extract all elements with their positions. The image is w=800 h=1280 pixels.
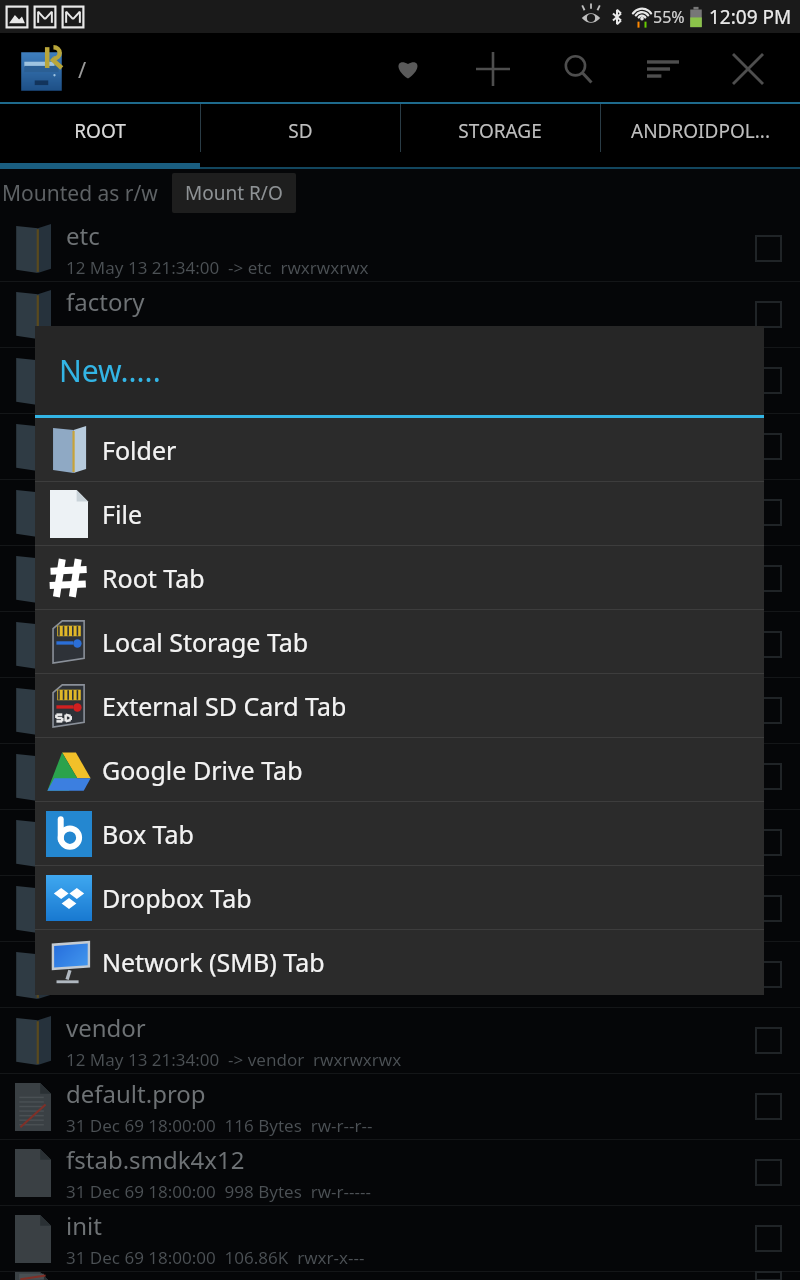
- button[interactable]: [0, 744, 800, 809]
- staticText: 12 May 13 21:34:00 -> efs rwxrwxrwx: [66, 322, 369, 345]
- staticText: 55%: [653, 6, 685, 28]
- staticText: STORAGE: [458, 118, 542, 144]
- button[interactable]: Dropbox Tab: [35, 866, 764, 929]
- button[interactable]: [0, 876, 800, 941]
- staticText: 12 May 13 21:34:00 -> etc rwxrwxrwx: [66, 256, 369, 279]
- button[interactable]: [0, 414, 800, 479]
- button[interactable]: vendor: [0, 1008, 800, 1073]
- staticText: Mounted as r/w: [2, 179, 158, 208]
- staticText: Dropbox Tab: [102, 881, 252, 915]
- button[interactable]: Box Tab: [35, 802, 764, 865]
- staticText: Folder: [102, 433, 177, 467]
- button[interactable]: Favorites: [365, 33, 450, 104]
- staticText: 31 Dec 69 18:00:00 106.86K rwxr-x---: [66, 1246, 365, 1269]
- button[interactable]: New: [450, 33, 535, 104]
- staticText: New.....: [59, 350, 161, 391]
- staticText: factory: [66, 285, 145, 318]
- button[interactable]: init: [0, 1206, 800, 1271]
- staticText: /: [78, 54, 87, 84]
- button[interactable]: [0, 810, 800, 875]
- button[interactable]: Search: [535, 33, 620, 104]
- button[interactable]: init.bt.rc: [0, 1272, 800, 1280]
- staticText: External SD Card Tab: [102, 689, 347, 723]
- button[interactable]: STORAGE: [400, 104, 600, 169]
- button[interactable]: Root Tab: [35, 546, 764, 609]
- button[interactable]: factory: [0, 282, 800, 347]
- button[interactable]: ANDROIDPOL...: [600, 104, 800, 169]
- button[interactable]: [0, 480, 800, 545]
- button[interactable]: Sort: [620, 33, 705, 104]
- button[interactable]: [0, 348, 800, 413]
- staticText: vendor: [66, 1011, 146, 1044]
- staticText: init: [66, 1209, 102, 1242]
- staticText: 12:09 PM: [709, 4, 792, 30]
- button[interactable]: etc: [0, 216, 800, 281]
- button[interactable]: ROOT: [0, 104, 200, 169]
- button[interactable]: default.prop: [0, 1074, 800, 1139]
- staticText: Box Tab: [102, 817, 194, 851]
- button[interactable]: File: [35, 482, 764, 545]
- staticText: 31 Dec 69 18:00:00 998 Bytes rw-r-----: [66, 1180, 371, 1203]
- staticText: etc: [66, 219, 100, 252]
- staticText: 12 May 13 21:34:00 -> vendor rwxrwxrwx: [66, 1048, 402, 1071]
- staticText: Local Storage Tab: [102, 625, 309, 659]
- button[interactable]: [0, 678, 800, 743]
- button[interactable]: Google Drive Tab: [35, 738, 764, 801]
- staticText: Root Tab: [102, 561, 205, 595]
- staticText: fstab.smdk4x12: [66, 1143, 245, 1176]
- staticText: default.prop: [66, 1077, 206, 1110]
- button[interactable]: App icon: [14, 41, 70, 97]
- button[interactable]: SD: [200, 104, 400, 169]
- button[interactable]: Close: [705, 33, 790, 104]
- staticText: SD: [288, 118, 313, 144]
- staticText: ANDROIDPOL...: [631, 118, 770, 144]
- button[interactable]: Network (SMB) Tab: [35, 930, 764, 993]
- button[interactable]: Mount R/O: [172, 173, 296, 213]
- staticText: 31 Dec 69 18:00:00 116 Bytes rw-r--r--: [66, 1114, 373, 1137]
- button[interactable]: fstab.smdk4x12: [0, 1140, 800, 1205]
- button[interactable]: Folder: [35, 418, 764, 481]
- button[interactable]: [0, 546, 800, 611]
- staticText: ROOT: [74, 118, 126, 144]
- button[interactable]: [0, 612, 800, 677]
- button[interactable]: External SD Card Tab: [35, 674, 764, 737]
- button[interactable]: Local Storage Tab: [35, 610, 764, 673]
- staticText: Network (SMB) Tab: [102, 945, 325, 979]
- staticText: Mount R/O: [185, 180, 283, 206]
- staticText: Google Drive Tab: [102, 753, 303, 787]
- staticText: File: [102, 497, 142, 531]
- button[interactable]: [0, 942, 800, 1007]
